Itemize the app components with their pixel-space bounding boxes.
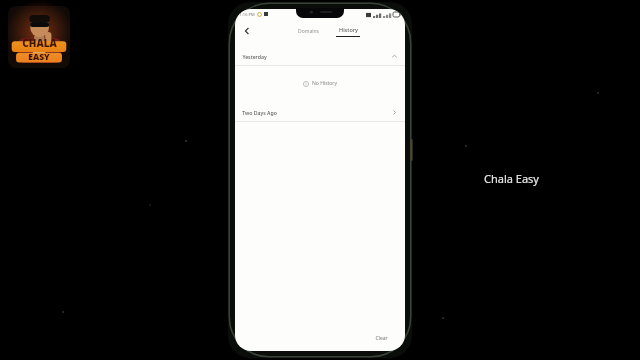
staticText: Yesterday (242, 53, 267, 60)
staticText: CHALA (22, 36, 57, 50)
button[interactable]: History (330, 26, 366, 37)
button[interactable]: Domains (291, 25, 326, 38)
staticText: Domains (298, 28, 319, 35)
staticText: EASY (28, 51, 50, 63)
staticText: No History (312, 80, 337, 87)
button[interactable]: Back (239, 23, 255, 39)
staticText: Two Days Ago (242, 109, 277, 116)
button[interactable]: Yesterday (235, 48, 405, 65)
button[interactable]: Clear (370, 332, 393, 345)
staticText: Clear (375, 335, 388, 342)
staticText: History (339, 26, 358, 33)
staticText: Chala Easy (484, 171, 539, 186)
staticText: 1:16 PM (239, 12, 255, 17)
button[interactable]: Two Days Ago (235, 104, 405, 121)
